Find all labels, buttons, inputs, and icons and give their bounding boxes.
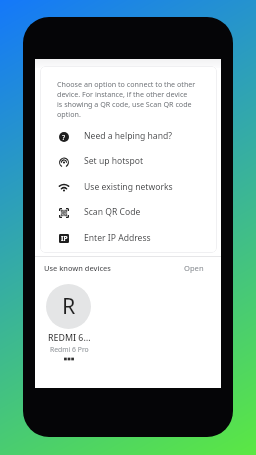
button[interactable]: ? [57,125,212,147]
button[interactable]: Use known devices [44,263,111,273]
staticText: Choose an option to connect to the other… [57,79,202,119]
staticText: Use existing networks [84,181,173,193]
staticText: Need a helping hand? [84,130,172,142]
staticText: Set up hotspot [84,155,144,167]
staticText: ? [62,132,66,142]
button[interactable]: Open [184,263,204,273]
button[interactable]: IP [57,227,212,249]
button[interactable]: Scan QR Code [57,201,212,223]
staticText: Scan QR Code [84,206,141,218]
button[interactable]: Set up hotspot [57,150,212,172]
staticText: R [62,291,76,320]
button[interactable]: Use existing networks [57,176,212,198]
staticText: Enter IP Address [84,232,151,244]
button[interactable]: R [46,284,91,329]
button[interactable]: More options [61,355,77,363]
staticText: Redmi 6 Pro [50,345,89,354]
staticText: IP [61,234,68,243]
staticText: REDMI 6… [48,332,91,344]
